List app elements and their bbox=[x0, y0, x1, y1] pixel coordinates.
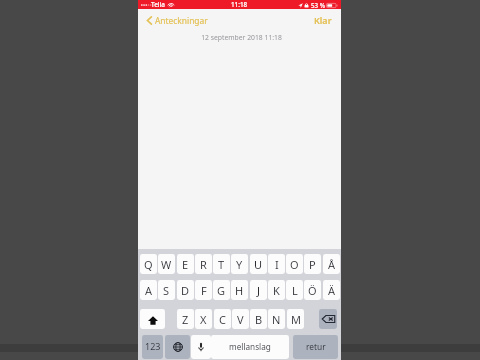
staticText: L bbox=[292, 283, 298, 298]
staticText: Klar bbox=[314, 14, 332, 26]
staticText: F bbox=[201, 283, 207, 298]
button[interactable]: G bbox=[213, 280, 230, 300]
staticText: I bbox=[275, 257, 279, 272]
staticText: 123 bbox=[145, 340, 161, 352]
button[interactable]: Backspace bbox=[319, 309, 337, 329]
staticText: Anteckningar bbox=[155, 15, 208, 26]
button[interactable]: O bbox=[286, 254, 303, 274]
button[interactable]: B bbox=[250, 309, 267, 329]
staticText: Å bbox=[328, 257, 336, 272]
button[interactable]: M bbox=[287, 309, 304, 329]
button[interactable]: C bbox=[214, 309, 231, 329]
button[interactable]: X bbox=[195, 309, 212, 329]
button[interactable]: Shift bbox=[140, 309, 165, 329]
button[interactable]: F bbox=[195, 280, 212, 300]
staticText: H bbox=[235, 283, 244, 298]
button[interactable]: A bbox=[140, 280, 157, 300]
button[interactable]: retur bbox=[293, 335, 338, 359]
staticText: M bbox=[291, 312, 301, 327]
button[interactable]: L bbox=[286, 280, 303, 300]
staticText: E bbox=[182, 257, 189, 272]
staticText: V bbox=[237, 312, 244, 327]
button[interactable]: Anteckningar bbox=[138, 9, 212, 31]
button[interactable]: P bbox=[304, 254, 321, 274]
button[interactable]: U bbox=[250, 254, 267, 274]
button[interactable]: H bbox=[231, 280, 248, 300]
staticText: N bbox=[272, 312, 281, 327]
button[interactable]: Å bbox=[323, 254, 340, 274]
button[interactable]: E bbox=[177, 254, 194, 274]
staticText: 53 % bbox=[311, 1, 325, 9]
staticText: Z bbox=[182, 312, 189, 327]
staticText: A bbox=[145, 283, 153, 298]
staticText: 11:18 bbox=[231, 0, 248, 9]
button[interactable]: Q bbox=[140, 254, 157, 274]
button[interactable]: Ö bbox=[304, 280, 321, 300]
button[interactable]: V bbox=[232, 309, 249, 329]
button[interactable]: Dictate bbox=[191, 335, 211, 359]
staticText: O bbox=[290, 257, 299, 272]
button[interactable]: Z bbox=[177, 309, 194, 329]
staticText: 12 september 2018 11:18 bbox=[201, 33, 282, 42]
button[interactable]: D bbox=[177, 280, 194, 300]
button[interactable]: I bbox=[268, 254, 285, 274]
staticText: P bbox=[309, 257, 316, 272]
staticText: Ä bbox=[328, 283, 336, 298]
button[interactable]: Y bbox=[231, 254, 248, 274]
staticText: G bbox=[217, 283, 226, 298]
button[interactable]: J bbox=[250, 280, 267, 300]
staticText: K bbox=[273, 283, 280, 298]
button[interactable]: S bbox=[158, 280, 175, 300]
staticText: retur bbox=[306, 341, 326, 352]
staticText: J bbox=[257, 283, 261, 298]
button[interactable]: T bbox=[213, 254, 230, 274]
button[interactable]: 123 bbox=[142, 335, 163, 359]
staticText: R bbox=[200, 257, 207, 272]
staticText: T bbox=[218, 257, 225, 272]
staticText: W bbox=[161, 257, 172, 272]
button[interactable]: K bbox=[268, 280, 285, 300]
staticText: X bbox=[200, 312, 207, 327]
button[interactable]: Next keyboard bbox=[165, 335, 190, 359]
button[interactable]: mellanslag bbox=[211, 335, 289, 359]
staticText: Ö bbox=[308, 283, 317, 298]
staticText: D bbox=[181, 283, 190, 298]
staticText: S bbox=[163, 283, 170, 298]
staticText: B bbox=[255, 312, 263, 327]
staticText: Telia bbox=[151, 0, 165, 9]
button[interactable]: Ä bbox=[323, 280, 340, 300]
button[interactable]: N bbox=[268, 309, 285, 329]
staticText: U bbox=[254, 257, 263, 272]
staticText: Q bbox=[144, 257, 153, 272]
staticText: C bbox=[219, 312, 226, 327]
button[interactable]: W bbox=[158, 254, 175, 274]
button[interactable]: R bbox=[195, 254, 212, 274]
staticText: Y bbox=[236, 257, 243, 272]
staticText: mellanslag bbox=[229, 341, 271, 352]
button[interactable]: Klar bbox=[304, 9, 341, 31]
